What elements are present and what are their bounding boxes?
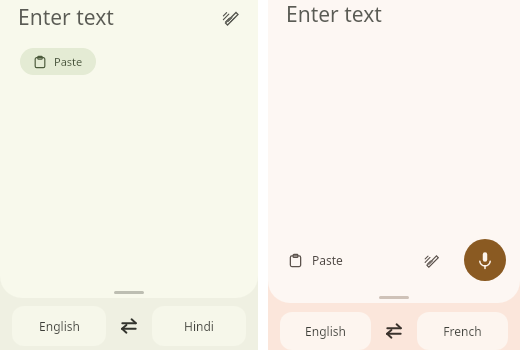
button[interactable]: Paste [20, 48, 96, 75]
staticText: Paste [54, 54, 83, 69]
staticText: English [305, 323, 346, 339]
button[interactable]: Swap languages [371, 312, 417, 350]
button[interactable]: Handwriting input [416, 244, 448, 276]
button[interactable]: Paste [286, 248, 345, 272]
staticText: English [39, 318, 80, 334]
button[interactable]: Hindi [152, 306, 246, 346]
button[interactable]: Voice input [464, 239, 506, 281]
button[interactable]: French [417, 312, 508, 350]
staticText: Hindi [184, 318, 214, 334]
button[interactable]: English [280, 312, 371, 350]
button[interactable]: Swap languages [106, 306, 152, 346]
staticText: French [443, 323, 482, 339]
staticText: Paste [312, 252, 343, 268]
staticText: Enter text [286, 0, 382, 29]
button[interactable]: Handwriting input [214, 0, 248, 34]
staticText: Enter text [18, 3, 114, 32]
button[interactable]: English [12, 306, 106, 346]
